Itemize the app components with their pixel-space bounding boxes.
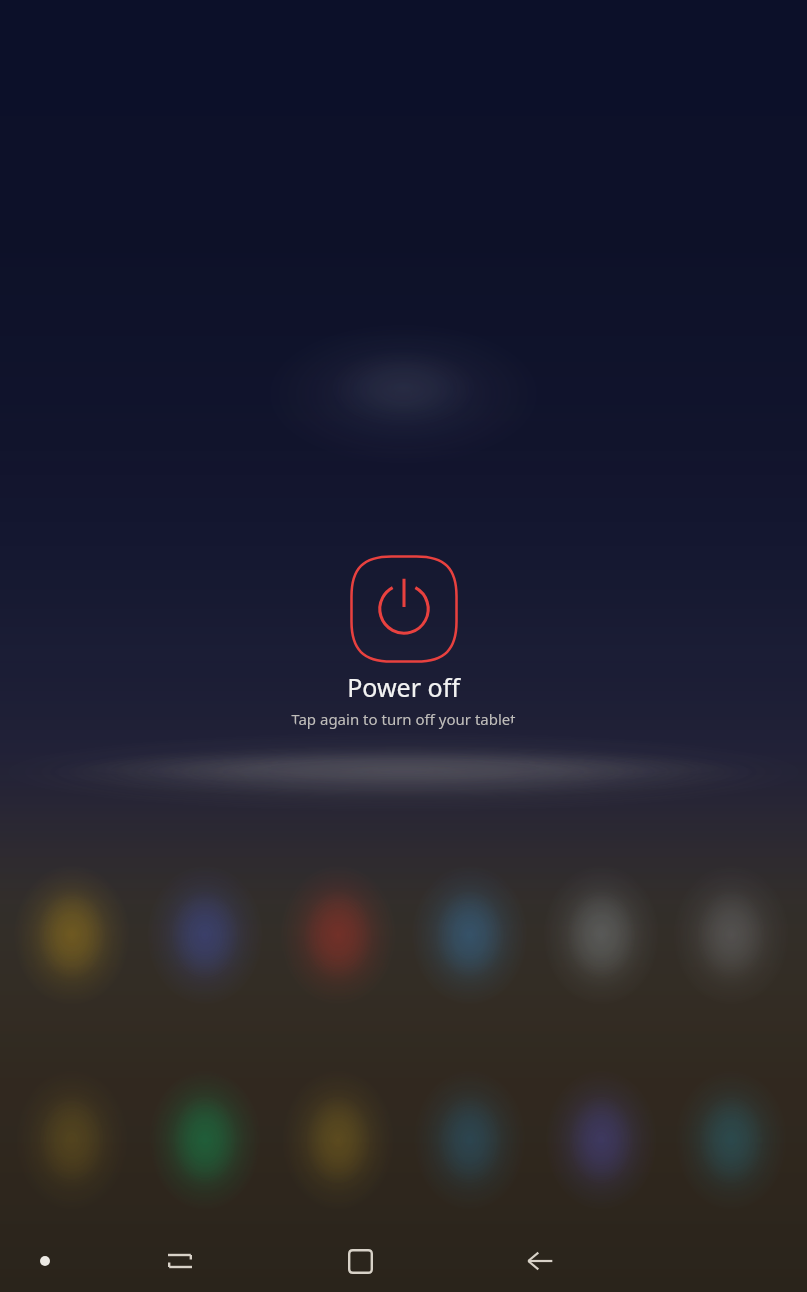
button[interactable]: Home — [270, 1230, 450, 1292]
button[interactable]: Hide keyboard indicator — [0, 1230, 90, 1292]
button[interactable]: Back — [450, 1230, 630, 1292]
button[interactable]: Recent apps — [90, 1230, 270, 1292]
button[interactable]: Power off. Tap again to turn off your ta… — [291, 550, 516, 729]
staticText: Power off — [347, 670, 460, 704]
staticText: Tap again to turn off your tablet — [291, 709, 516, 729]
